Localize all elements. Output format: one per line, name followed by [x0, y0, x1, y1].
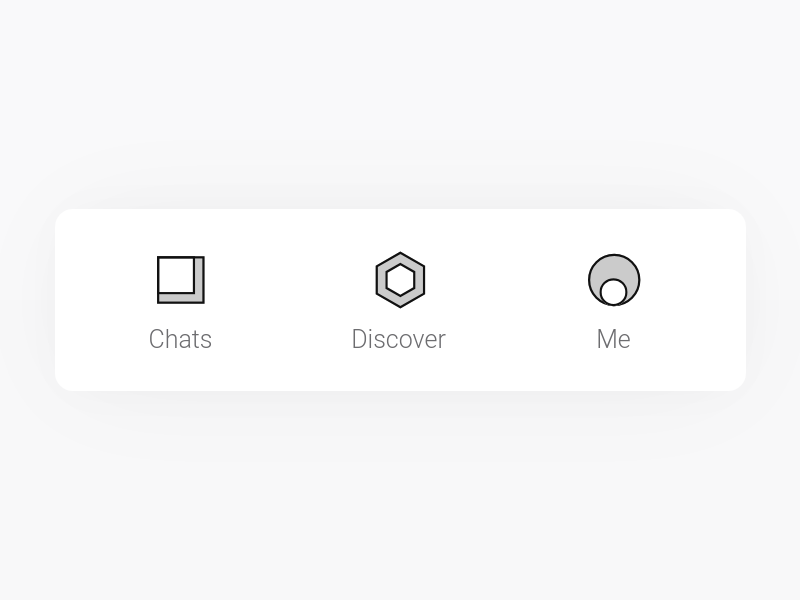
button[interactable]: Chats — [65, 209, 295, 391]
staticText: Chats — [148, 325, 213, 354]
button[interactable]: Discover — [283, 209, 513, 391]
button[interactable]: Me — [498, 209, 728, 391]
staticText: Me — [596, 325, 631, 354]
staticText: Discover — [351, 325, 446, 354]
